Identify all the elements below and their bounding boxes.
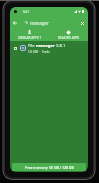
button[interactable]: Back [11,19,19,27]
button[interactable]: Free memory: 50 GB / 128 GB [12,163,86,171]
button[interactable]: RELATED APPS [49,29,88,41]
staticText: RELATED APPS [58,36,80,40]
staticText: SIMILAR APPS 1 [18,36,42,40]
staticText: 3.8.1 [55,43,66,49]
button[interactable]: Clear search [77,18,87,28]
staticText: File [28,43,36,49]
staticText: Free memory: 50 GB / 128 GB [25,165,74,170]
staticText: manager [30,20,49,26]
button[interactable]: File [10,41,88,55]
button[interactable]: SIMILAR APPS 1 [10,29,49,41]
staticText: 9:41 [23,10,29,14]
staticText: manager [36,43,55,49]
staticText: 1.5 MB · Tools [28,50,50,54]
